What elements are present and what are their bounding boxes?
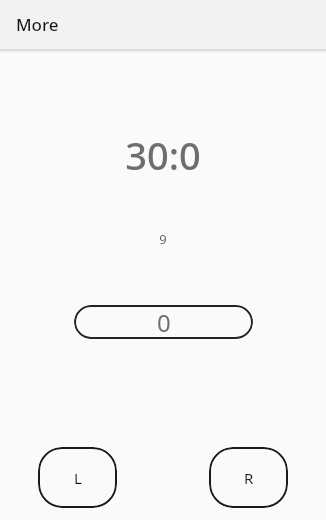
staticText: 0 xyxy=(157,306,171,339)
staticText: L xyxy=(74,468,82,488)
button[interactable]: L xyxy=(38,447,117,508)
button[interactable]: 0 xyxy=(74,305,253,339)
staticText: R xyxy=(244,468,254,488)
staticText: 9 xyxy=(0,230,326,248)
staticText: More xyxy=(16,13,59,36)
staticText: 30:0 xyxy=(0,129,326,181)
button[interactable]: R xyxy=(209,447,288,508)
